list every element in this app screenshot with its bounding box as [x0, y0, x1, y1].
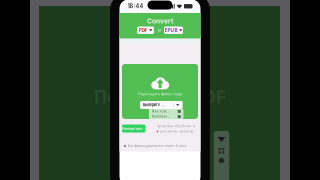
button[interactable]: PDF: [137, 27, 154, 34]
staticText: Настройки обработки: [156, 124, 191, 128]
staticText: PDF: [139, 27, 148, 33]
button[interactable]: Zoom: [218, 158, 224, 164]
button[interactable]: Конвертировать: [122, 124, 145, 132]
staticText: Convert: [147, 17, 173, 25]
staticText: Моё устройство: [151, 110, 170, 113]
staticText: Перевести PDF: [94, 86, 226, 107]
staticText: Перетащите файлы сюда: [138, 92, 182, 96]
button[interactable]: Моё устройство: [149, 109, 183, 114]
staticText: Все файлы удаляются через 2 часа: [128, 144, 186, 148]
staticText: to: [157, 28, 160, 33]
button[interactable]: EPUB: [164, 27, 183, 34]
button[interactable]: Настройки обработки: [156, 124, 195, 128]
staticText: Из облачного хранилища: [151, 115, 170, 118]
staticText: Выберите файл: [143, 103, 165, 107]
staticText: Конвертировать: [122, 126, 145, 131]
staticText: EPUB: [165, 27, 178, 33]
button[interactable]: Из облачного хранилища: [149, 114, 183, 119]
staticText: документы, изображения: [160, 130, 198, 133]
button[interactable]: Выберите файл: [140, 101, 183, 109]
button[interactable]: Collapse: [215, 135, 227, 144]
staticText: 18:44: [127, 3, 143, 10]
button[interactable]: Grid: [219, 148, 224, 154]
